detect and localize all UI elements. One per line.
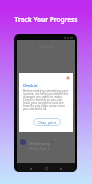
button[interactable]: Feel like going (20, 139, 72, 151)
staticText: Okay, got it (38, 120, 57, 125)
staticText: Check in (23, 83, 38, 88)
button[interactable]: Close (66, 76, 70, 80)
button[interactable]: Home (45, 167, 48, 170)
staticText: Track Your Progress (0, 15, 92, 24)
staticText: Before making something your routine, we… (23, 89, 69, 111)
button[interactable]: Okay, got it (33, 118, 61, 126)
staticText: Weekly Goal: 5 (29, 147, 50, 151)
staticText: Feel like going (29, 142, 50, 146)
